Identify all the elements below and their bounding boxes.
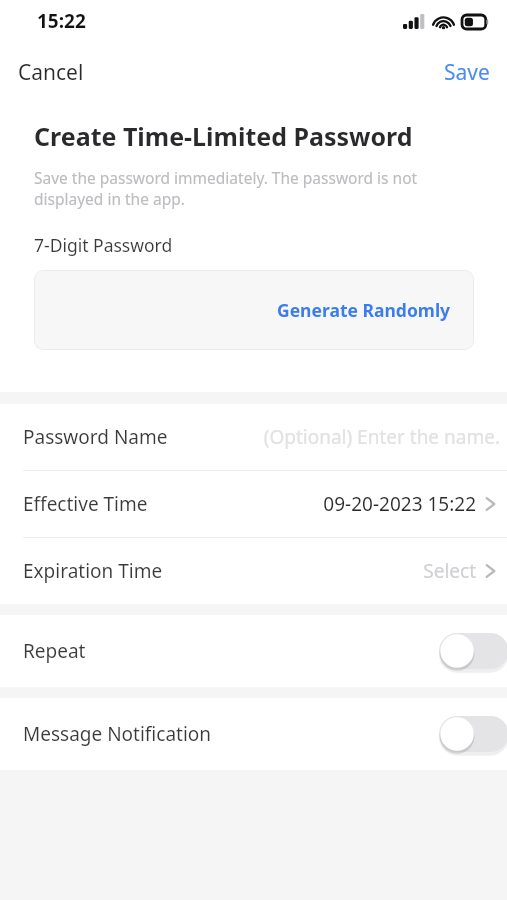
staticText: Expiration Time <box>23 558 163 584</box>
button[interactable]: Message Notification <box>0 698 507 770</box>
button[interactable]: Cancel <box>10 52 92 93</box>
button[interactable]: Message Notification toggle, off <box>439 712 507 756</box>
staticText: Generate Randomly <box>277 298 451 322</box>
button[interactable]: Generate Randomly <box>34 270 474 350</box>
staticText: 09-20-2023 15:22 <box>323 491 476 517</box>
button[interactable]: Generate Randomly <box>275 294 453 326</box>
staticText: Cancel <box>18 58 84 87</box>
staticText: 15:22 <box>37 8 86 34</box>
staticText: (Optional) Enter the name. <box>263 424 500 450</box>
staticText: Effective Time <box>23 491 148 517</box>
staticText: Repeat <box>23 638 86 664</box>
staticText: Message Notification <box>23 721 212 747</box>
button[interactable]: Repeat toggle, off <box>439 629 507 673</box>
button[interactable]: Repeat <box>0 615 507 687</box>
button[interactable]: Password Name <box>0 404 507 470</box>
staticText: Save the password immediately. The passw… <box>34 167 475 210</box>
button[interactable]: Save <box>436 52 498 93</box>
staticText: 7-Digit Password <box>34 233 173 257</box>
button[interactable]: Expiration Time <box>0 538 507 604</box>
staticText: Create Time-Limited Password <box>34 119 413 153</box>
staticText: Password Name <box>23 424 168 450</box>
button[interactable]: Effective Time <box>0 471 507 537</box>
staticText: Save <box>444 58 490 87</box>
staticText: Select <box>423 558 476 584</box>
